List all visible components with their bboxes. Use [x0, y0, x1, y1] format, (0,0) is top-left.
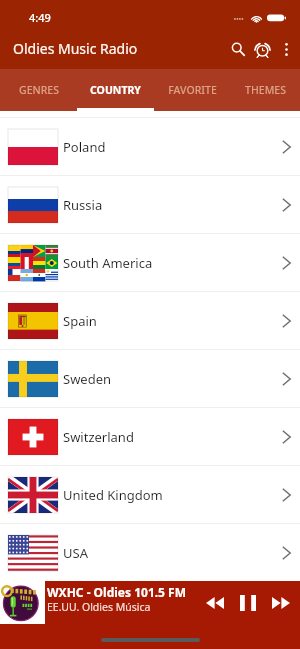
staticText: Spain — [63, 312, 97, 330]
button[interactable]: THEMES — [231, 69, 300, 111]
staticText: FAVORITE — [168, 83, 217, 97]
button[interactable]: Previous — [199, 587, 230, 618]
button[interactable]: Switzerland — [0, 408, 300, 465]
staticText: Russia — [63, 196, 103, 214]
button[interactable]: GENRES — [0, 69, 77, 111]
button[interactable]: United Kingdom — [0, 466, 300, 523]
button[interactable]: Sleep timer — [250, 37, 274, 61]
staticText: Switzerland — [63, 428, 134, 446]
staticText: Oldies Music Radio — [13, 39, 138, 58]
button[interactable]: Sweden — [0, 350, 300, 407]
button[interactable]: Next — [265, 587, 296, 618]
staticText: USA — [63, 544, 88, 562]
button[interactable]: Pause — [232, 587, 263, 618]
staticText: Poland — [63, 138, 106, 156]
staticText: Sweden — [63, 370, 112, 388]
staticText: WXHC - Oldies 101.5 FM — [47, 584, 187, 600]
button[interactable]: Russia — [0, 176, 300, 233]
button[interactable]: More options — [274, 37, 298, 61]
button[interactable]: COUNTRY — [77, 69, 154, 111]
staticText: COUNTRY — [90, 83, 141, 97]
staticText: THEMES — [245, 83, 286, 97]
button[interactable]: South America — [0, 234, 300, 291]
button[interactable]: Spain — [0, 292, 300, 349]
button[interactable]: Poland — [0, 118, 300, 175]
button[interactable]: Search — [226, 37, 250, 61]
staticText: South America — [63, 254, 153, 272]
button[interactable]: FAVORITE — [154, 69, 231, 111]
staticText: GENRES — [19, 83, 59, 97]
staticText: 4:49 — [29, 10, 51, 25]
staticText: United Kingdom — [63, 486, 163, 504]
staticText: EE.UU. Oldies Música — [47, 600, 151, 614]
button[interactable]: USA — [0, 524, 300, 581]
